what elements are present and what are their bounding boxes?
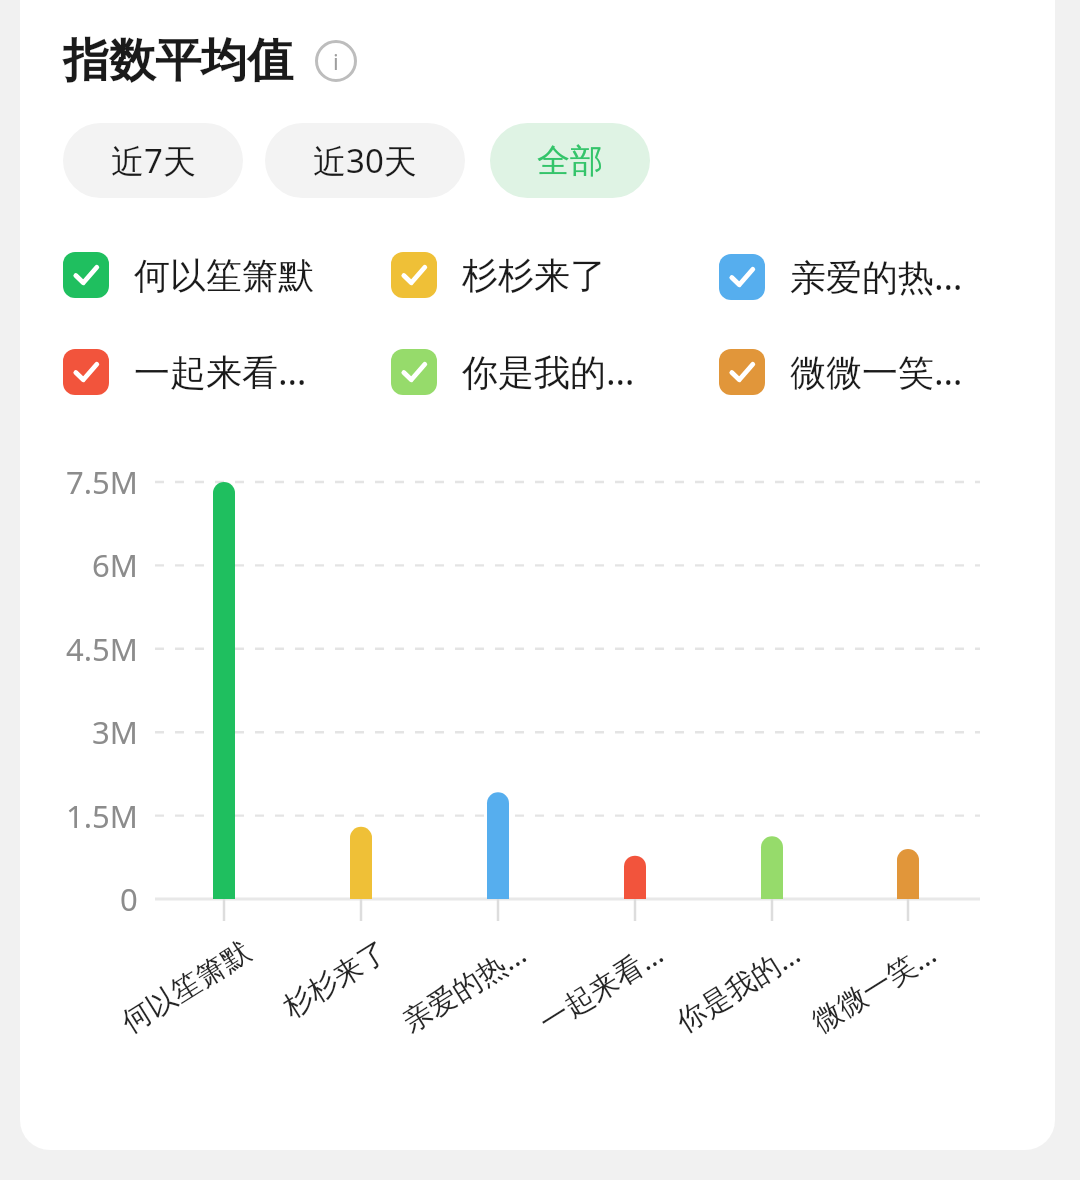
button[interactable]: 微微一笑… [719,347,1047,396]
staticText: 何以笙箫默 [134,253,314,298]
staticText: 全部 [537,140,603,182]
button[interactable]: Information [315,40,357,82]
staticText: 亲爱的热… [790,252,963,301]
staticText: 一起来看… [134,347,307,396]
staticText: 指数平均值 [63,32,293,90]
staticText: 近7天 [111,138,196,183]
button[interactable]: 亲爱的热… [719,252,1047,301]
staticText: 近30天 [313,138,417,183]
staticText: 你是我的… [462,347,635,396]
button[interactable]: 一起来看… [63,347,391,396]
button[interactable]: 近7天 [63,123,243,198]
staticText: 微微一笑… [790,347,963,396]
staticText: 杉杉来了 [462,253,606,298]
staticText: i [333,46,339,76]
button[interactable]: 你是我的… [391,347,719,396]
button[interactable]: 近30天 [265,123,465,198]
button[interactable]: 杉杉来了 [391,252,719,298]
button[interactable]: 何以笙箫默 [63,252,391,298]
button[interactable]: 全部 [490,123,650,198]
